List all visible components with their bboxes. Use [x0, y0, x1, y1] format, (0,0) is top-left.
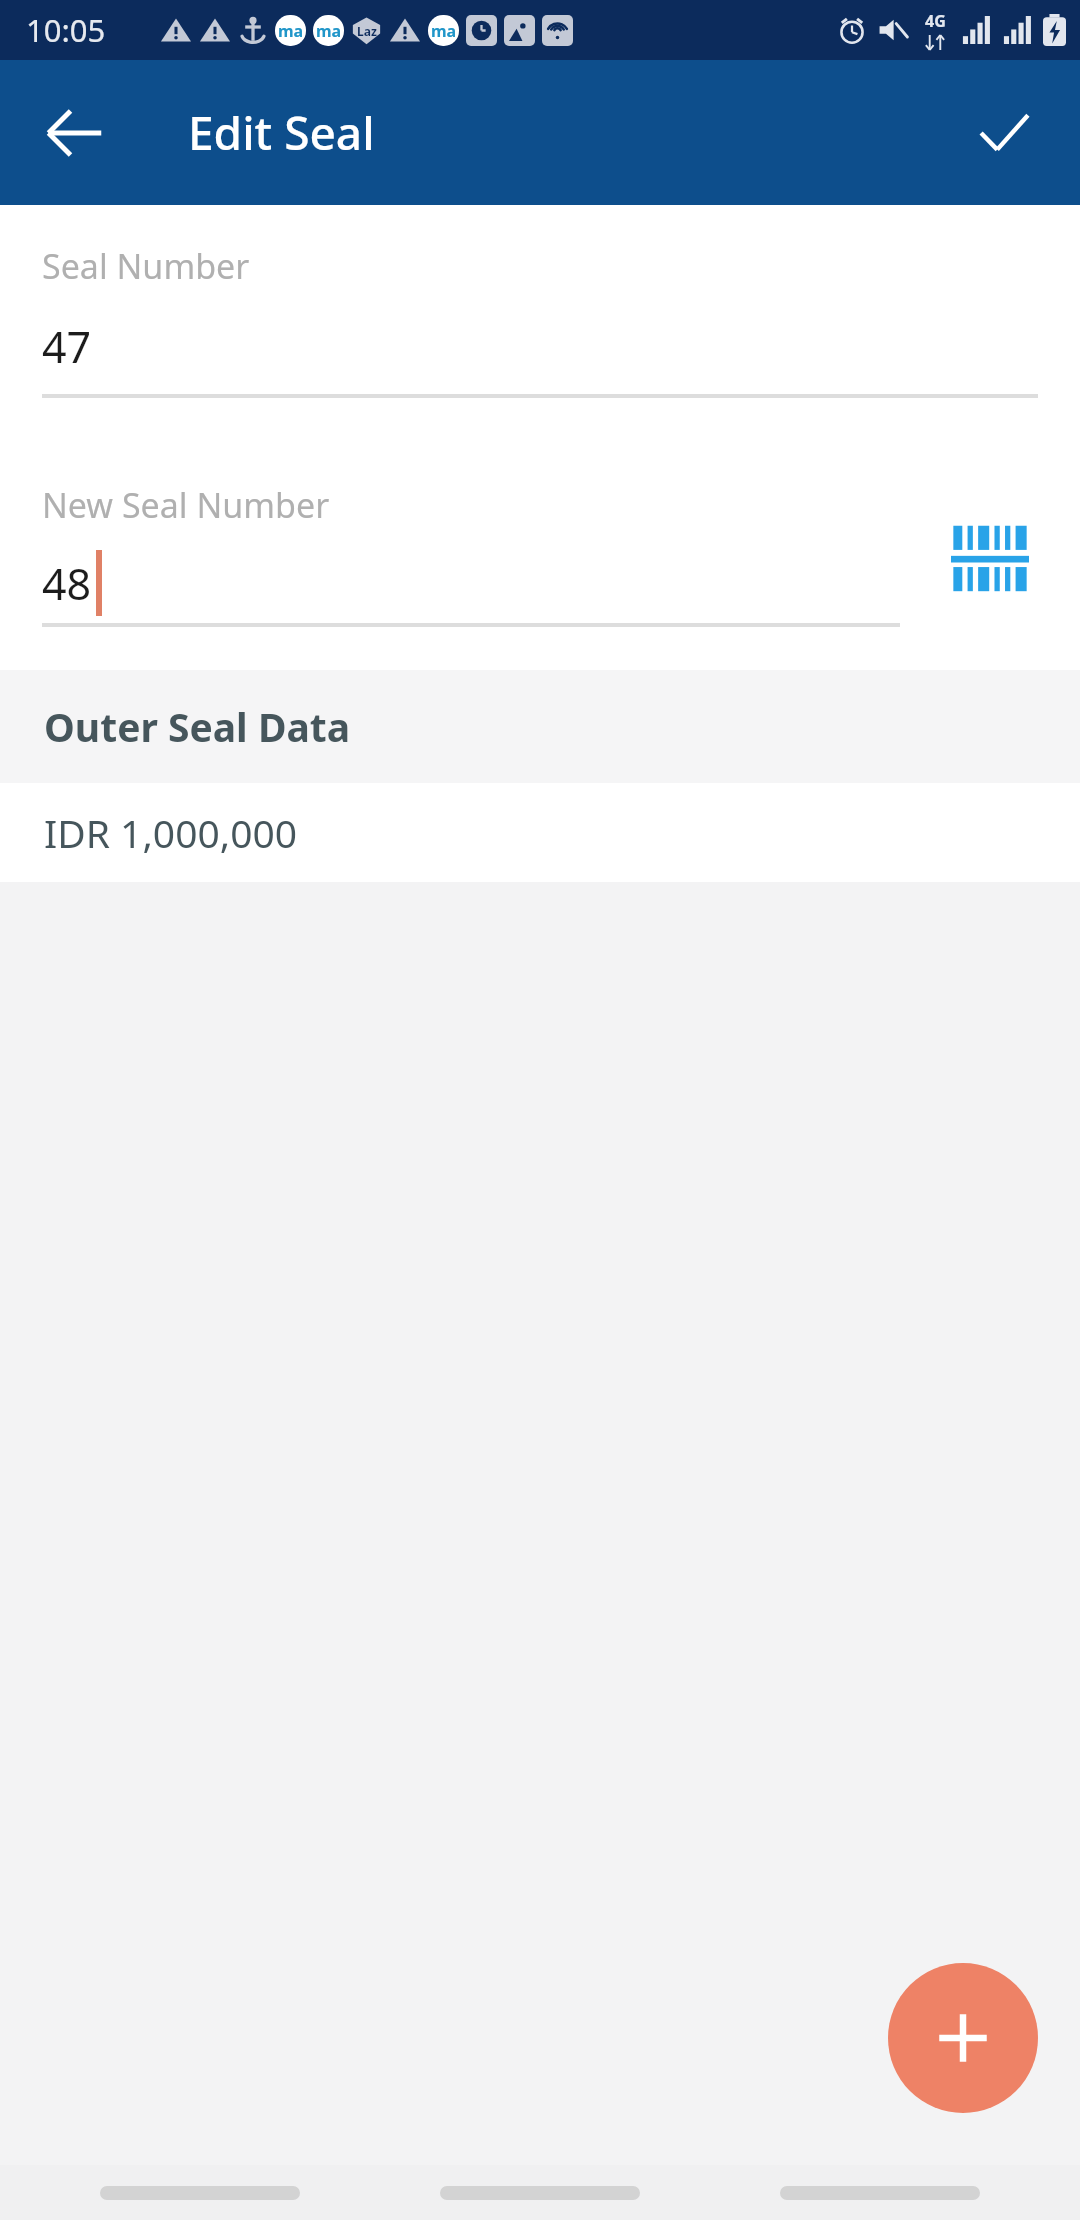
staticText: Laz — [357, 23, 377, 39]
staticText: Outer Seal Data — [44, 700, 351, 753]
button[interactable] — [440, 2186, 640, 2200]
staticText: 4G — [925, 10, 946, 32]
staticText: ma — [278, 20, 304, 42]
staticText: Edit Seal — [188, 101, 375, 164]
staticText: New Seal Number — [42, 482, 330, 528]
staticText: ma — [316, 20, 342, 42]
staticText: 48 — [42, 554, 92, 613]
staticText: Seal Number — [42, 243, 250, 289]
button[interactable]: Back — [22, 81, 126, 185]
button[interactable] — [100, 2186, 300, 2200]
button[interactable] — [780, 2186, 980, 2200]
button[interactable]: Save — [952, 81, 1056, 185]
staticText: 47 — [42, 317, 92, 376]
staticText: ma — [431, 20, 457, 42]
button[interactable]: Add — [888, 1963, 1038, 2113]
button[interactable]: Scan barcode — [916, 485, 1064, 633]
button[interactable]: IDR 1,000,000 — [0, 783, 1080, 882]
staticText: IDR 1,000,000 — [44, 806, 298, 859]
staticText: 10:05 — [26, 9, 106, 51]
